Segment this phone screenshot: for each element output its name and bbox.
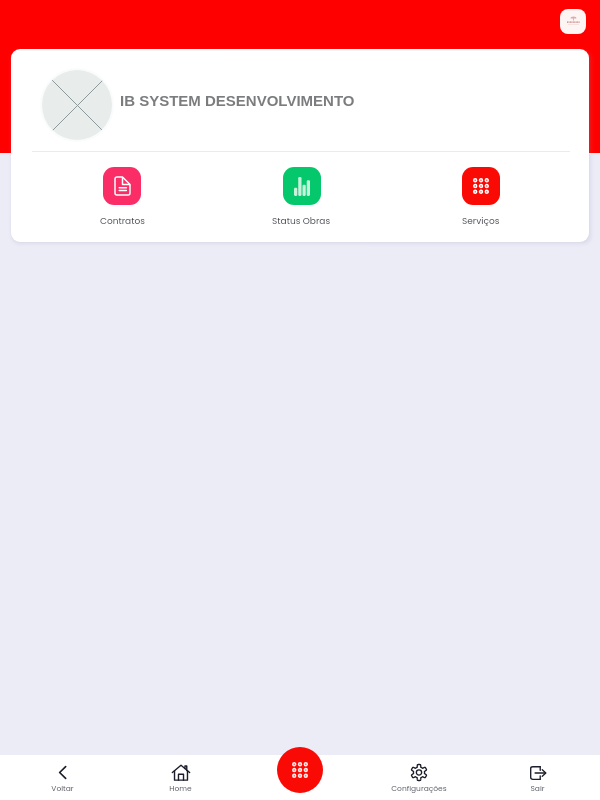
button[interactable]: Configurações <box>359 755 478 800</box>
button[interactable]: Serviços <box>277 747 323 793</box>
button[interactable]: Voltar <box>3 755 121 800</box>
button[interactable]: Serviços <box>391 152 570 242</box>
staticText: Sair <box>530 783 545 793</box>
button[interactable]: Contratos <box>32 152 212 242</box>
staticText: IB SYSTEM DESENVOLVIMENTO <box>120 92 355 109</box>
button[interactable]: Status Obras <box>212 152 391 242</box>
button[interactable]: Sair <box>478 755 597 800</box>
staticText: Contratos <box>100 215 145 228</box>
staticText: Home <box>169 783 192 793</box>
staticText: Serviços <box>462 215 500 228</box>
staticText: Configurações <box>391 783 447 793</box>
staticText: Voltar <box>51 783 74 793</box>
button[interactable]: Home <box>121 755 240 800</box>
staticText: Status Obras <box>272 215 331 228</box>
button[interactable]: Logo <box>560 9 586 34</box>
